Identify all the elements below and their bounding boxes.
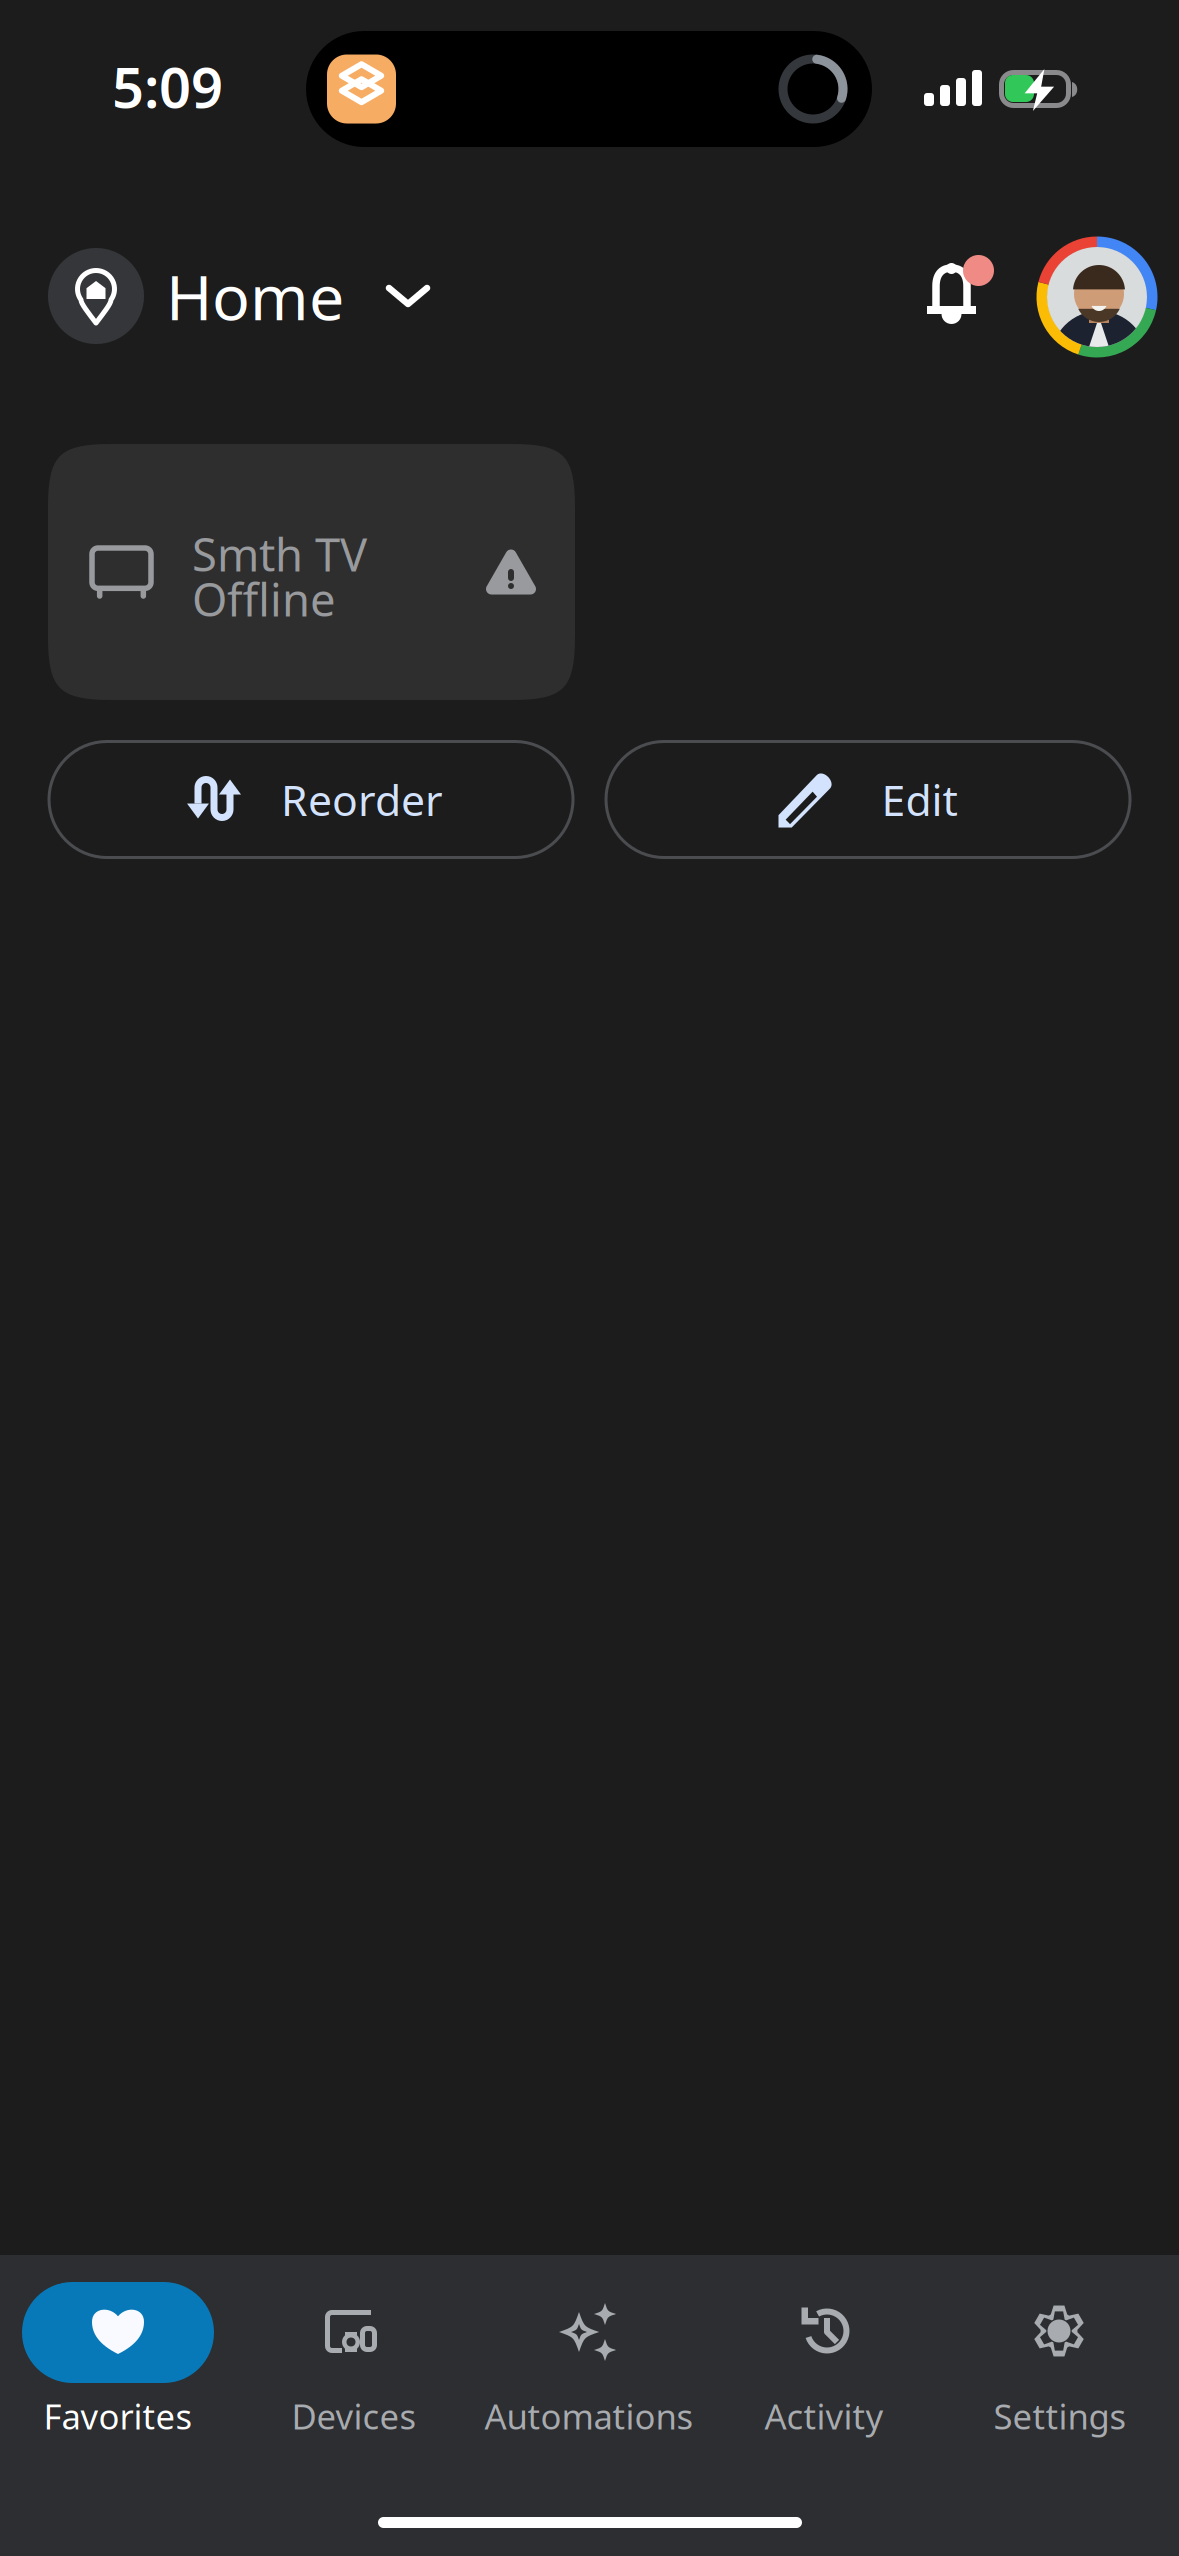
button[interactable]: Home	[48, 236, 441, 356]
button[interactable]: Account	[1036, 236, 1158, 358]
button[interactable]: Edit	[604, 740, 1131, 859]
staticText: Favorites	[43, 2393, 192, 2439]
staticText: Automations	[484, 2393, 693, 2439]
staticText: 5:09	[112, 49, 223, 123]
button[interactable]: Settings	[942, 2255, 1178, 2455]
button[interactable]: Notifications	[916, 241, 1012, 337]
button[interactable]: Reorder	[47, 740, 574, 859]
button[interactable]: Activity	[706, 2255, 942, 2455]
staticText: Devices	[291, 2393, 416, 2439]
button[interactable]: Devices	[236, 2255, 472, 2455]
staticText: Settings	[993, 2393, 1126, 2439]
button[interactable]: Automations	[471, 2255, 707, 2455]
staticText: Reorder	[281, 771, 443, 828]
staticText: Home	[166, 254, 344, 338]
staticText: Offline	[192, 569, 336, 629]
staticText: Edit	[881, 771, 957, 828]
staticText: Activity	[764, 2393, 883, 2439]
button[interactable]: Favorites	[0, 2255, 236, 2455]
staticText: Smth TV	[192, 524, 367, 584]
button[interactable]: Smth TV	[48, 444, 575, 700]
